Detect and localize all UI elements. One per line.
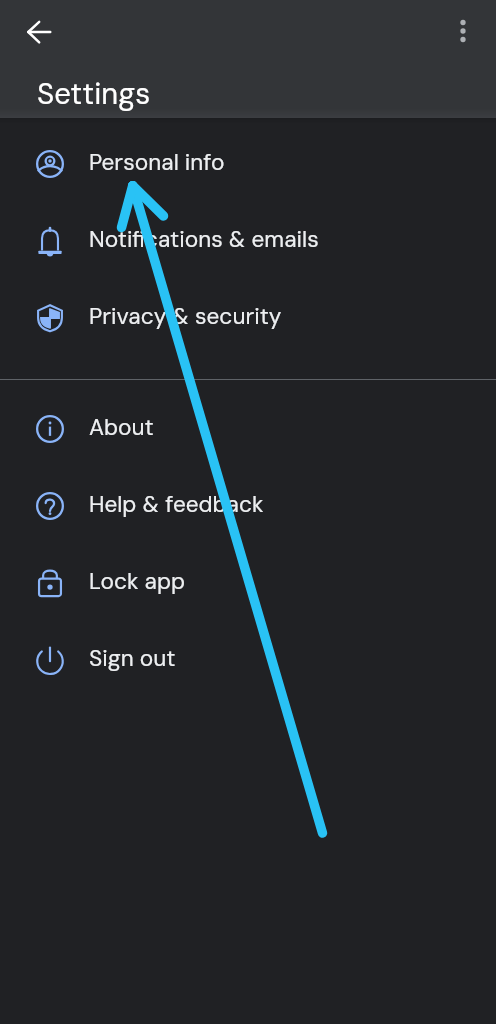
button[interactable]: Help & feedback <box>0 466 496 543</box>
button[interactable]: About <box>0 389 496 466</box>
staticText: Sign out <box>89 644 176 673</box>
button[interactable]: Notifications & emails <box>0 201 496 278</box>
staticText: Help & feedback <box>89 490 264 519</box>
button[interactable]: Back <box>17 10 61 54</box>
staticText: Settings <box>37 75 151 113</box>
staticText: About <box>89 413 154 442</box>
staticText: Personal info <box>89 148 225 177</box>
button[interactable]: Lock app <box>0 543 496 620</box>
button[interactable]: Sign out <box>0 620 496 697</box>
button[interactable]: More options <box>441 9 485 53</box>
button[interactable]: Privacy & security <box>0 278 496 355</box>
staticText: Lock app <box>89 567 186 596</box>
staticText: Privacy & security <box>89 302 282 331</box>
button[interactable]: Personal info <box>0 124 496 201</box>
staticText: Notifications & emails <box>89 225 319 254</box>
